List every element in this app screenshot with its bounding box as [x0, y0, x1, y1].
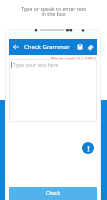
staticText: Type or speak to enter text in the box	[0, 5, 107, 18]
button[interactable]: Back	[9, 39, 22, 55]
button[interactable]: Speak	[82, 142, 94, 154]
button[interactable]: Clear text	[85, 39, 96, 55]
staticText: Words Limit ( 0 / 1000 )	[51, 56, 96, 62]
staticText: Type your text here	[13, 62, 59, 69]
button[interactable]: Paste	[74, 39, 85, 55]
button[interactable]: Check	[9, 187, 97, 200]
staticText: Check Grammar	[24, 43, 70, 51]
staticText: Check	[46, 190, 61, 197]
